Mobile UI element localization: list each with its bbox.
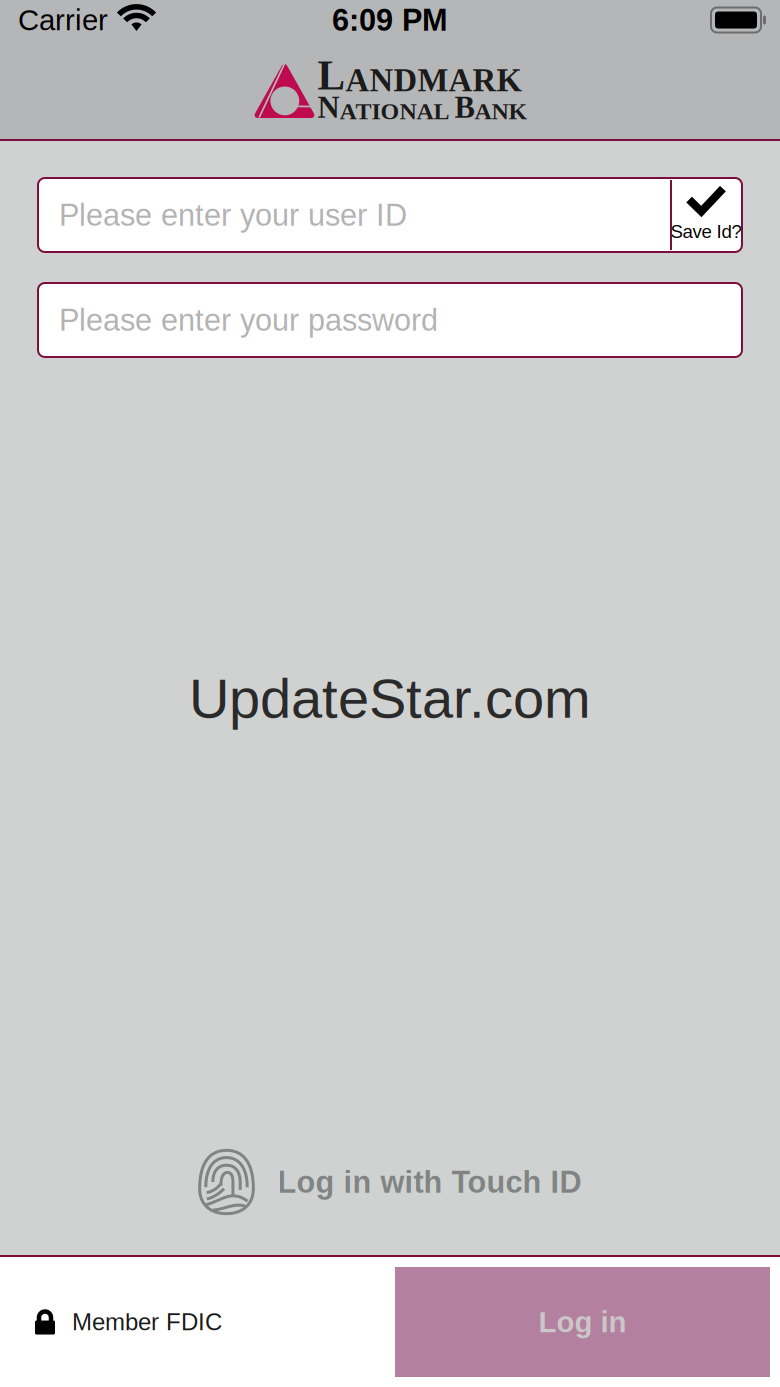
staticText: 6:09 PM	[332, 3, 448, 37]
button[interactable]: Save Id	[670, 180, 742, 250]
staticText: Log in with Touch ID	[277, 1165, 581, 1199]
button[interactable]: Log in with Touch ID	[198, 1149, 581, 1215]
staticText: N	[317, 90, 339, 124]
staticText: UpdateStar.com	[189, 667, 591, 730]
staticText: L	[317, 53, 345, 98]
staticText: ATIONAL	[339, 98, 454, 124]
staticText: ANDMARK	[345, 62, 521, 98]
button[interactable]: Log in	[395, 1267, 770, 1377]
staticText: Save Id?	[670, 221, 741, 242]
staticText: Please enter your password	[59, 303, 438, 337]
staticText: Please enter your user ID	[59, 198, 407, 232]
staticText: B	[454, 90, 474, 124]
staticText: Member FDIC	[72, 1309, 222, 1335]
staticText: Carrier	[18, 4, 108, 36]
staticText: Log in	[538, 1306, 626, 1338]
staticText: ANK	[474, 98, 527, 124]
